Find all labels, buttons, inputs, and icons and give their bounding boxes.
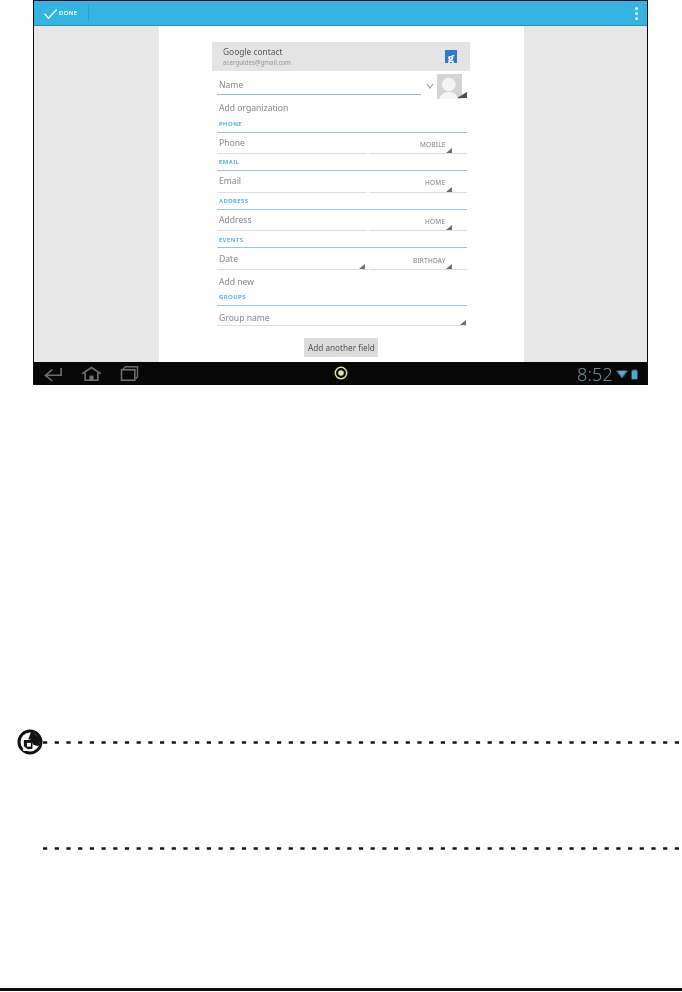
staticText: Email [219,175,242,187]
button[interactable]: DONE [35,0,121,26]
staticText: PHONE [219,120,243,128]
staticText: g [448,50,455,63]
staticText: Phone [219,137,245,149]
staticText: ADDRESS [219,197,249,205]
button[interactable]: Google contact [212,42,470,71]
staticText: HOME [425,178,446,187]
staticText: Group name [219,312,270,324]
staticText: GROUPS [219,293,246,301]
button[interactable]: Add new [217,275,467,289]
button[interactable]: Acer logo [17,729,43,755]
button[interactable]: Add organization [217,101,467,115]
staticText: Date [219,253,239,265]
button[interactable]: Recent apps [120,366,139,381]
staticText: EVENTS [219,236,244,244]
staticText: MOBILE [420,140,446,149]
staticText: BIRTHDAY [413,256,446,265]
button[interactable]: Group name [217,311,467,325]
button[interactable]: Home [81,366,102,381]
staticText: DONE [59,9,78,17]
staticText: EMAIL [219,158,240,166]
staticText: Add another field [308,342,375,353]
button[interactable]: Back [44,366,62,381]
staticText: Add new [219,276,255,288]
button[interactable]: Name [217,77,467,95]
staticText: Name [219,79,244,91]
button[interactable]: More options [623,0,649,26]
staticText: Add organization [219,102,289,114]
staticText: acerguides@gmail.com [223,58,291,66]
staticText: Google contact [223,46,283,57]
staticText: HOME [425,217,446,226]
button[interactable]: Add contact photo [437,74,462,99]
button[interactable]: Add another field [304,338,378,357]
staticText: Address [219,214,252,226]
staticText: 8:52 [577,362,614,385]
